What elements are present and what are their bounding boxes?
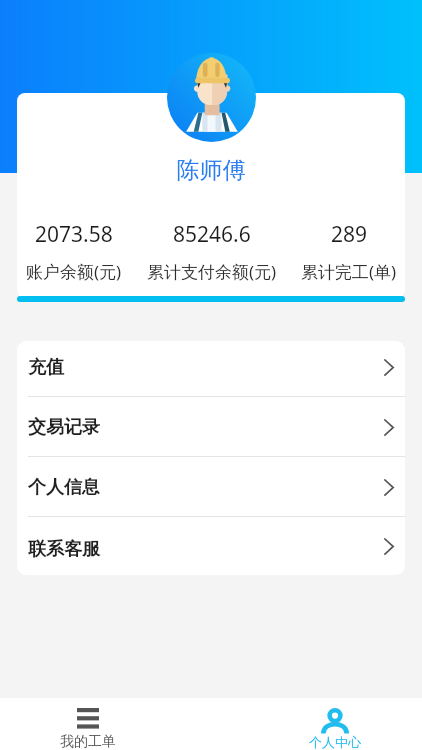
staticText: 账户余额(元) [26,260,122,283]
staticText: 289 [331,220,368,249]
staticText: 个人信息 [28,476,384,499]
staticText: 累计支付余额(元) [147,260,277,283]
button[interactable]: 交易记录 [17,397,405,457]
other: 我的工单 [74,708,102,732]
staticText: 联系客服 [28,538,384,561]
staticText: 2073.58 [35,220,113,249]
staticText: 充值 [28,356,384,379]
staticText: 交易记录 [28,416,384,439]
staticText: 我的工单 [60,733,116,750]
other: 个人中心 [321,708,349,734]
staticText: 个人中心 [309,734,361,750]
staticText: 85246.6 [173,220,251,249]
button[interactable]: 充值 [17,341,405,397]
button[interactable]: 我的工单 [0,698,175,750]
staticText: 累计完工(单) [301,260,397,283]
staticText: 陈师傅 [17,156,405,185]
button[interactable]: 个人信息 [17,457,405,517]
button[interactable]: 个人中心 [247,698,422,750]
button[interactable]: 联系客服 [17,516,405,575]
